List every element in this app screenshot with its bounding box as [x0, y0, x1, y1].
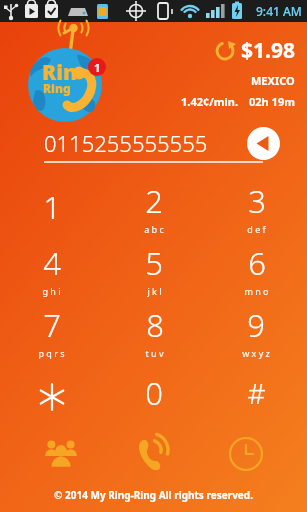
staticText: 5 — [145, 242, 163, 284]
staticText: © 2014 My Ring-Ring All rights reserved. — [54, 488, 253, 502]
button[interactable]: 2 — [103, 176, 205, 238]
staticText: 0115255555555 — [44, 128, 208, 158]
staticText: 2 — [145, 180, 163, 222]
button[interactable]: 6 — [205, 238, 307, 300]
button[interactable] — [0, 362, 103, 424]
button[interactable]: Recent calls — [214, 424, 278, 484]
staticText: $1.98 — [241, 36, 295, 65]
staticText: MEXICO — [251, 73, 295, 88]
staticText: 9:41 AM — [256, 3, 302, 19]
staticText: m n o — [244, 285, 269, 297]
button[interactable]: # — [205, 362, 307, 424]
staticText: 1.42¢/min. — [181, 94, 239, 109]
button[interactable]: Ring Ring logo — [22, 32, 114, 120]
button[interactable]: Contacts — [29, 424, 93, 484]
button[interactable]: Refresh balance — [215, 41, 235, 61]
button[interactable]: 1 — [0, 176, 103, 238]
staticText: Ring — [43, 80, 71, 96]
button[interactable]: 0 — [103, 362, 205, 424]
button[interactable]: 9 — [205, 300, 307, 362]
staticText: p q r s — [38, 347, 65, 359]
button[interactable]: 4 — [0, 238, 103, 300]
staticText: g h i — [42, 285, 61, 297]
staticText: 3 — [248, 180, 266, 222]
staticText: # — [247, 374, 266, 412]
staticText: a b c — [144, 223, 164, 235]
staticText: j k l — [147, 285, 162, 297]
staticText: 8 — [146, 304, 164, 346]
button[interactable]: Backspace — [247, 127, 280, 160]
staticText: 7 — [43, 304, 61, 346]
staticText: d e f — [247, 223, 266, 235]
button[interactable]: 7 — [0, 300, 103, 362]
staticText: 6 — [248, 242, 266, 284]
button[interactable]: 3 — [205, 176, 307, 238]
button[interactable]: 8 — [103, 300, 205, 362]
staticText: w x y z — [242, 347, 270, 359]
staticText: 1 — [43, 186, 61, 228]
staticText: 9 — [247, 304, 265, 346]
staticText: 02h 19m — [249, 94, 295, 109]
staticText: 4 — [43, 242, 61, 284]
button[interactable]: Dialer — [122, 424, 186, 484]
staticText: 0 — [145, 372, 163, 414]
staticText: t u v — [145, 347, 164, 359]
staticText: Rin — [42, 58, 78, 87]
staticText: 1 — [94, 60, 101, 75]
button[interactable]: 5 — [103, 238, 205, 300]
